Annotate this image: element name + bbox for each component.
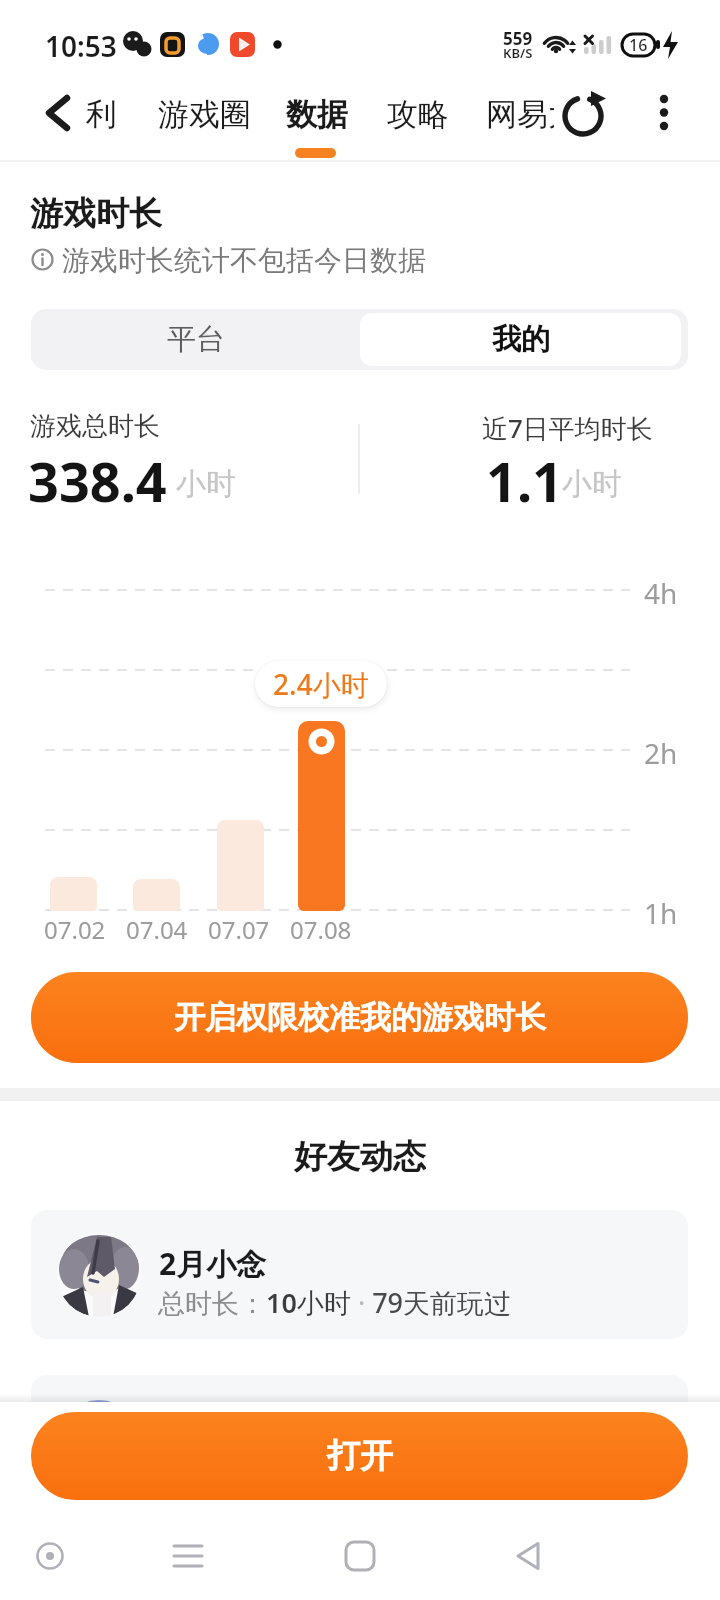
staticText: 07.04 bbox=[126, 913, 188, 945]
button[interactable]: 利 bbox=[84, 95, 118, 133]
staticText: 338.4 bbox=[28, 444, 167, 508]
staticText: 开启权限校准我的游戏时长 bbox=[174, 998, 546, 1037]
button[interactable]: 数据 bbox=[284, 95, 350, 133]
staticText: 07.08 bbox=[290, 913, 352, 945]
staticText: 网易大 bbox=[486, 95, 554, 133]
staticText: 07.07 bbox=[208, 913, 270, 945]
staticText: 游戏时长 bbox=[30, 193, 162, 233]
staticText: 平台 bbox=[167, 321, 225, 358]
staticText: KB/S bbox=[503, 44, 533, 60]
button[interactable]: 攻略 bbox=[385, 95, 451, 133]
staticText: 总时长：10小时 · 79天前玩过 bbox=[158, 1284, 512, 1318]
button[interactable] bbox=[506, 1532, 554, 1580]
staticText: 利 bbox=[86, 95, 117, 133]
button[interactable] bbox=[31, 1375, 688, 1535]
button[interactable] bbox=[36, 91, 80, 135]
button[interactable] bbox=[164, 1532, 212, 1580]
staticText: 4h bbox=[644, 574, 678, 606]
button[interactable] bbox=[31, 1210, 688, 1339]
button[interactable]: 我的 bbox=[360, 313, 681, 366]
button[interactable]: 打开 bbox=[31, 1412, 688, 1500]
staticText: 10:53 bbox=[45, 27, 117, 63]
staticText: 16 bbox=[629, 34, 648, 56]
staticText: 2.4小时 bbox=[273, 665, 369, 703]
staticText: 我的 bbox=[492, 321, 550, 358]
button[interactable]: 网易大 bbox=[486, 95, 554, 133]
staticText: 2h bbox=[644, 734, 678, 766]
button[interactable] bbox=[561, 93, 609, 137]
staticText: 1.1 bbox=[486, 444, 563, 508]
staticText: 好友动态 bbox=[294, 1136, 426, 1176]
button[interactable] bbox=[336, 1532, 384, 1580]
staticText: 打开 bbox=[327, 1435, 393, 1477]
button[interactable] bbox=[644, 91, 684, 135]
button[interactable]: 开启权限校准我的游戏时长 bbox=[31, 972, 688, 1063]
staticText: 559 bbox=[503, 27, 533, 45]
staticText: 1h bbox=[644, 894, 678, 926]
staticText: 2月小念 bbox=[159, 1243, 267, 1279]
button[interactable] bbox=[26, 1532, 74, 1580]
staticText: 小时 bbox=[176, 465, 236, 503]
staticText: 攻略 bbox=[387, 95, 449, 133]
staticText: 游戏时长统计不包括今日数据 bbox=[62, 243, 426, 278]
staticText: 游戏总时长 bbox=[30, 410, 160, 442]
staticText: 小时 bbox=[562, 465, 622, 503]
staticText: 近7日平均时长 bbox=[482, 410, 653, 442]
staticText: 游戏圈 bbox=[158, 95, 251, 133]
button[interactable]: 游戏圈 bbox=[156, 95, 252, 133]
staticText: 07.02 bbox=[44, 913, 106, 945]
button[interactable]: 平台 bbox=[31, 309, 360, 370]
staticText: 数据 bbox=[286, 95, 348, 133]
